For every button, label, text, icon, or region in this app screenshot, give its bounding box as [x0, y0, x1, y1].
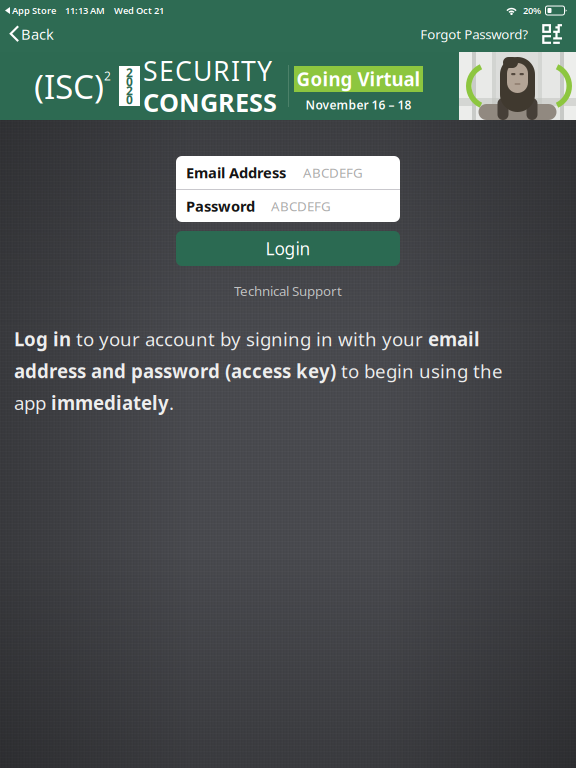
staticText: Login — [265, 237, 310, 260]
staticText: Email Address — [186, 163, 286, 182]
staticText: email — [428, 327, 480, 351]
staticText: 2 — [126, 82, 133, 98]
staticText: 20% — [523, 4, 541, 17]
staticText: 0 — [126, 73, 133, 89]
staticText: Forgot Password? — [420, 25, 528, 43]
staticText: 2 — [104, 68, 111, 84]
staticText: app — [14, 390, 51, 415]
staticText: CONGRESS — [143, 85, 277, 119]
button[interactable]: Back — [5, 21, 63, 47]
button[interactable]: Login — [176, 231, 400, 266]
staticText: to begin using the — [336, 358, 503, 383]
staticText: November 16 – 18 — [305, 97, 411, 113]
button[interactable]: Forgot Password? — [414, 21, 534, 47]
staticText: Log in — [14, 327, 71, 351]
staticText: Wed Oct 21 — [114, 4, 164, 17]
staticText: ABCDEFG — [271, 197, 331, 215]
staticText: Back — [21, 24, 54, 44]
staticText: Password — [186, 196, 255, 216]
staticText: immediately — [51, 390, 169, 415]
staticText: address and password (access key) — [14, 358, 336, 383]
staticText: Technical Support — [234, 282, 342, 300]
staticText: App Store — [12, 4, 56, 17]
staticText: 11:13 AM — [65, 4, 105, 17]
staticText: . — [169, 390, 174, 415]
staticText: Going Virtual — [296, 67, 420, 91]
button[interactable]: Scan QR code — [540, 21, 564, 47]
staticText: 0 — [126, 91, 133, 107]
staticText: ABCDEFG — [303, 164, 363, 181]
staticText: (ISC) — [34, 64, 104, 108]
staticText: to your account by signing in with your — [71, 327, 428, 351]
staticText: 2 — [126, 64, 133, 80]
staticText: SECURITY — [143, 53, 272, 88]
button[interactable]: Technical Support — [228, 279, 348, 303]
